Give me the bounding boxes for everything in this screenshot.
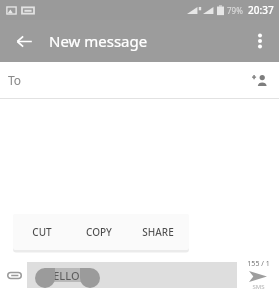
staticText: 20:37 bbox=[248, 3, 274, 17]
button[interactable]: Attach bbox=[1, 262, 27, 288]
button[interactable]: Add recipient bbox=[245, 66, 273, 94]
staticText: SHARE bbox=[142, 225, 174, 239]
button[interactable]: To bbox=[0, 62, 279, 98]
staticText: HELLO bbox=[45, 268, 80, 283]
staticText: CUT bbox=[32, 225, 52, 239]
staticText: 155 / 1 bbox=[247, 259, 270, 269]
staticText: To bbox=[8, 72, 22, 88]
staticText: New message bbox=[49, 31, 148, 51]
button[interactable]: COPY bbox=[70, 214, 127, 250]
button[interactable]: CUT bbox=[13, 214, 70, 250]
staticText: COPY bbox=[86, 225, 112, 239]
button[interactable]: More options bbox=[245, 26, 275, 56]
staticText: SMS bbox=[252, 283, 265, 291]
button[interactable]: Navigate up bbox=[9, 26, 39, 56]
button[interactable]: Send SMS bbox=[240, 259, 276, 291]
button[interactable]: SHARE bbox=[127, 214, 189, 250]
button[interactable]: HELLO bbox=[27, 262, 237, 288]
staticText: 79% bbox=[227, 5, 243, 16]
